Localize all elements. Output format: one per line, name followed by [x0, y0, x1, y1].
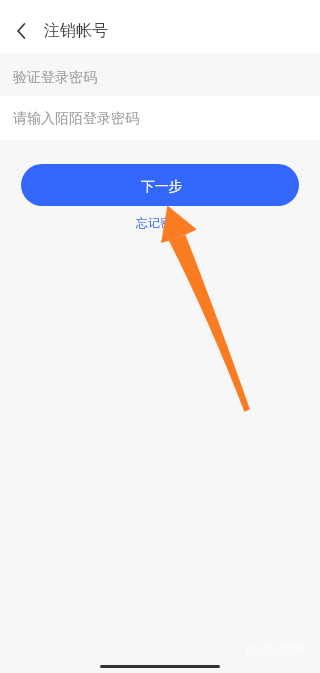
button[interactable]: Back — [1, 11, 41, 51]
staticText: 注销帐号 — [44, 21, 108, 41]
button[interactable]: 下一步 — [21, 164, 299, 206]
staticText: 验证登录密码 — [13, 69, 97, 87]
staticText: 下一步 — [141, 178, 183, 195]
staticText: 请输入陌陌登录密码 — [13, 110, 139, 128]
button[interactable]: 忘记密码 — [126, 212, 194, 233]
button[interactable]: 请输入陌陌登录密码 — [0, 96, 320, 140]
staticText: 忘记密码 — [136, 215, 184, 230]
